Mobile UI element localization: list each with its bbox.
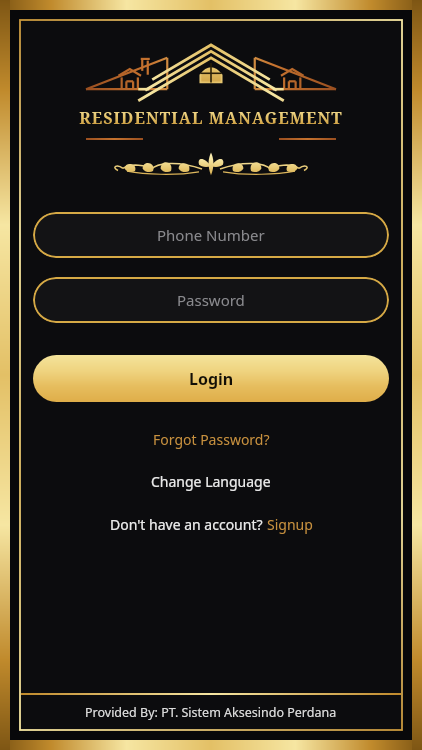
staticText: Password: [177, 290, 245, 310]
button[interactable]: Login: [33, 355, 389, 402]
staticText: Phone Number: [157, 225, 265, 245]
staticText: Don't have an account?: [110, 515, 267, 534]
staticText: Forgot Password?: [153, 430, 270, 449]
staticText: RESIDENTIAL MANAGEMENT: [79, 107, 343, 129]
staticText: Signup: [267, 515, 313, 534]
button[interactable]: Forgot Password?: [143, 427, 280, 452]
button[interactable]: Change Language: [141, 469, 281, 494]
staticText: Login: [189, 368, 234, 390]
other: Residential Management logo: [86, 41, 336, 97]
button[interactable]: Password: [33, 277, 389, 323]
button[interactable]: Don't have an account?: [106, 511, 317, 538]
staticText: Change Language: [151, 472, 271, 491]
button[interactable]: Phone Number: [33, 212, 389, 258]
staticText: Provided By: PT. Sistem Aksesindo Perdan…: [85, 704, 337, 721]
